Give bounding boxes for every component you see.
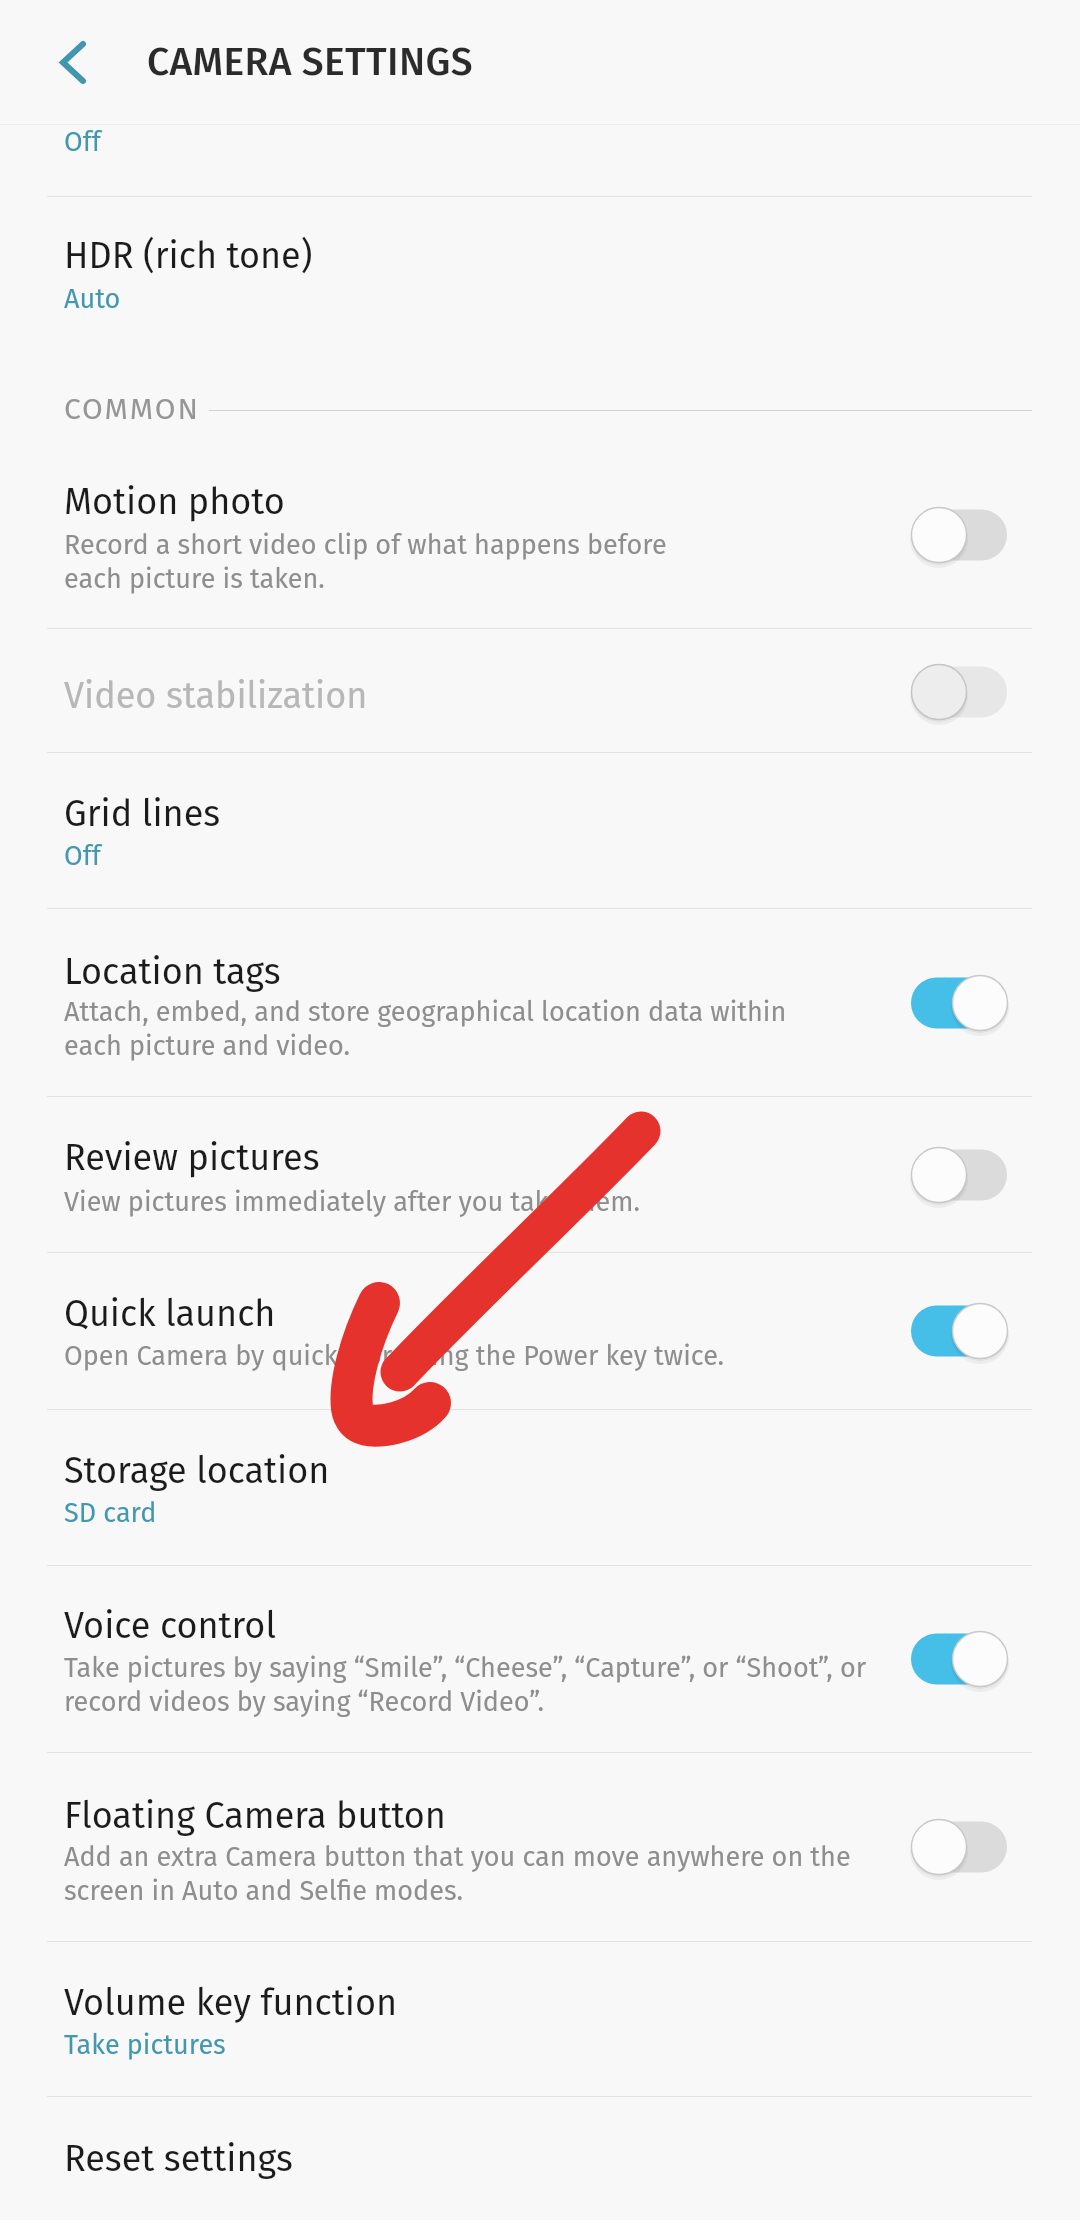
staticText: Take pictures <box>64 2029 226 2061</box>
button[interactable]: Off <box>911 1818 1007 1876</box>
staticText: Volume key function <box>64 1981 398 2024</box>
button[interactable]: Navigate up <box>12 10 116 114</box>
button[interactable] <box>0 1753 1080 1941</box>
staticText: Grid lines <box>64 792 221 835</box>
staticText: View pictures immediately after you take… <box>64 1186 640 1218</box>
staticText: SD card <box>64 1497 157 1529</box>
button[interactable]: On <box>911 974 1007 1032</box>
staticText: Reset settings <box>64 2137 293 2180</box>
staticText: Record a short video clip of what happen… <box>64 529 667 595</box>
staticText: Attach, embed, and store geographical lo… <box>64 996 787 1062</box>
staticText: Take pictures by saying “Smile”, “Cheese… <box>64 1652 867 1718</box>
staticText: Off <box>64 840 101 872</box>
staticText: Floating Camera button <box>64 1794 446 1837</box>
button[interactable] <box>0 1410 1080 1565</box>
staticText: Open Camera by quickly pressing the Powe… <box>64 1340 725 1372</box>
button[interactable]: Off <box>911 506 1007 564</box>
staticText: Quick launch <box>64 1292 276 1335</box>
staticText: Review pictures <box>64 1136 320 1179</box>
staticText: COMMON <box>64 391 200 427</box>
button[interactable] <box>0 125 1080 196</box>
button[interactable] <box>0 629 1080 752</box>
staticText: Motion photo <box>64 480 285 523</box>
button[interactable] <box>0 1942 1080 2096</box>
button[interactable] <box>0 197 1080 377</box>
button[interactable]: On <box>911 1630 1007 1688</box>
staticText: Location tags <box>64 950 281 993</box>
staticText: Auto <box>64 283 121 315</box>
staticText: Add an extra Camera button that you can … <box>64 1841 851 1907</box>
button[interactable] <box>0 2097 1080 2220</box>
button[interactable] <box>0 753 1080 908</box>
staticText: Storage location <box>64 1449 330 1492</box>
button[interactable] <box>0 909 1080 1096</box>
button[interactable]: Off <box>911 1146 1007 1204</box>
button[interactable] <box>0 1097 1080 1252</box>
staticText: Voice control <box>64 1604 276 1647</box>
button[interactable] <box>0 1253 1080 1409</box>
button[interactable] <box>0 430 1080 628</box>
staticText: HDR (rich tone) <box>64 234 313 277</box>
staticText: CAMERA SETTINGS <box>147 39 473 86</box>
staticText: Off <box>64 126 101 158</box>
button[interactable]: On <box>911 1302 1007 1360</box>
button[interactable]: Off <box>911 663 1007 721</box>
staticText: Video stabilization <box>64 674 368 717</box>
button[interactable] <box>0 1566 1080 1752</box>
